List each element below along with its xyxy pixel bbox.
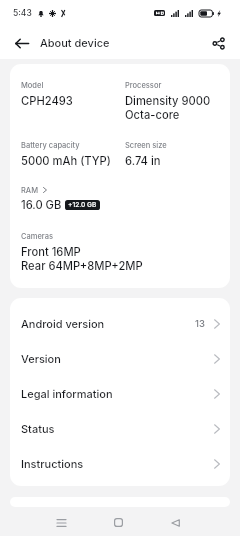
staticText: Android version xyxy=(21,317,105,330)
staticText: Dimensity 9000 xyxy=(125,94,211,108)
staticText: Front 16MP xyxy=(21,245,81,259)
staticText: About device xyxy=(40,36,110,49)
staticText: Battery capacity xyxy=(21,141,80,150)
button[interactable]: Home xyxy=(104,507,132,536)
staticText: Status xyxy=(21,422,55,435)
staticText: 5:43 xyxy=(13,8,32,18)
staticText: Rear 64MP+8MP+2MP xyxy=(21,259,143,273)
button[interactable]: Back xyxy=(10,31,34,55)
staticText: Instructions xyxy=(21,457,84,470)
button[interactable]: Android version xyxy=(10,306,230,341)
staticText: Model xyxy=(21,81,44,90)
staticText: Legal information xyxy=(21,387,113,400)
staticText: 13 xyxy=(195,318,205,329)
staticText: Cameras xyxy=(21,232,53,241)
staticText: Version xyxy=(21,352,61,365)
button[interactable]: Back xyxy=(161,507,189,536)
staticText: Screen size xyxy=(125,141,167,150)
staticText: Octa-core xyxy=(125,108,180,122)
staticText: 5000 mAh (TYP) xyxy=(21,154,111,168)
staticText: +12.0 GB xyxy=(68,201,97,209)
button[interactable]: Share xyxy=(206,31,230,55)
button[interactable]: Status xyxy=(10,411,230,446)
staticText: 16.0 GB xyxy=(21,198,62,212)
staticText: RAM xyxy=(21,186,39,195)
button[interactable]: Instructions xyxy=(10,446,230,481)
button[interactable]: Recent apps xyxy=(47,507,75,536)
staticText: 6.74 in xyxy=(125,154,161,168)
button[interactable]: Version xyxy=(10,341,230,376)
staticText: CPH2493 xyxy=(21,94,73,108)
button[interactable]: RAM xyxy=(21,185,47,195)
staticText: Processor xyxy=(125,81,162,90)
button[interactable]: Legal information xyxy=(10,376,230,411)
